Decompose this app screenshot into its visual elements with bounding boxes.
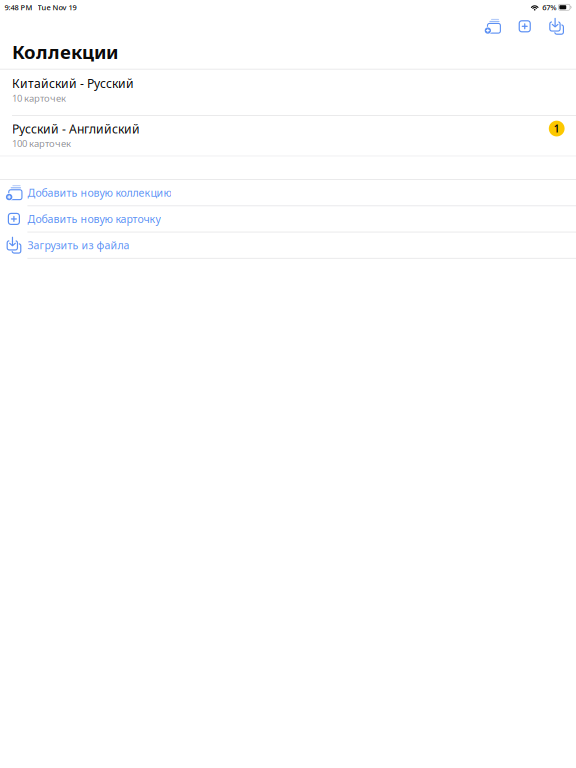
staticText: 67% (542, 2, 556, 12)
button[interactable]: Добавить новую карточку (0, 206, 576, 232)
staticText: Tue Nov 19 (38, 2, 77, 12)
staticText: Русский - Английский (12, 120, 140, 137)
staticText: 10 карточек (12, 91, 66, 104)
staticText: Загрузить из файла (27, 238, 129, 252)
staticText: 1 (554, 122, 560, 135)
button[interactable]: Добавить новую коллекцию (0, 180, 576, 206)
button[interactable]: Загрузить из файла (0, 232, 576, 259)
button[interactable]: Русский - Английский (0, 116, 576, 156)
staticText: Добавить новую карточку (27, 212, 160, 226)
staticText: 9:48 PM (5, 2, 33, 12)
button[interactable]: Add new card (519, 20, 531, 32)
staticText: Коллекции (12, 39, 118, 64)
button[interactable]: Import from file (549, 18, 564, 35)
staticText: 100 карточек (12, 137, 71, 150)
button[interactable]: Китайский - Русский (0, 70, 576, 115)
button[interactable]: Add new collection (484, 19, 500, 34)
staticText: Китайский - Русский (12, 75, 134, 91)
staticText: Добавить новую коллекцию (27, 185, 171, 200)
